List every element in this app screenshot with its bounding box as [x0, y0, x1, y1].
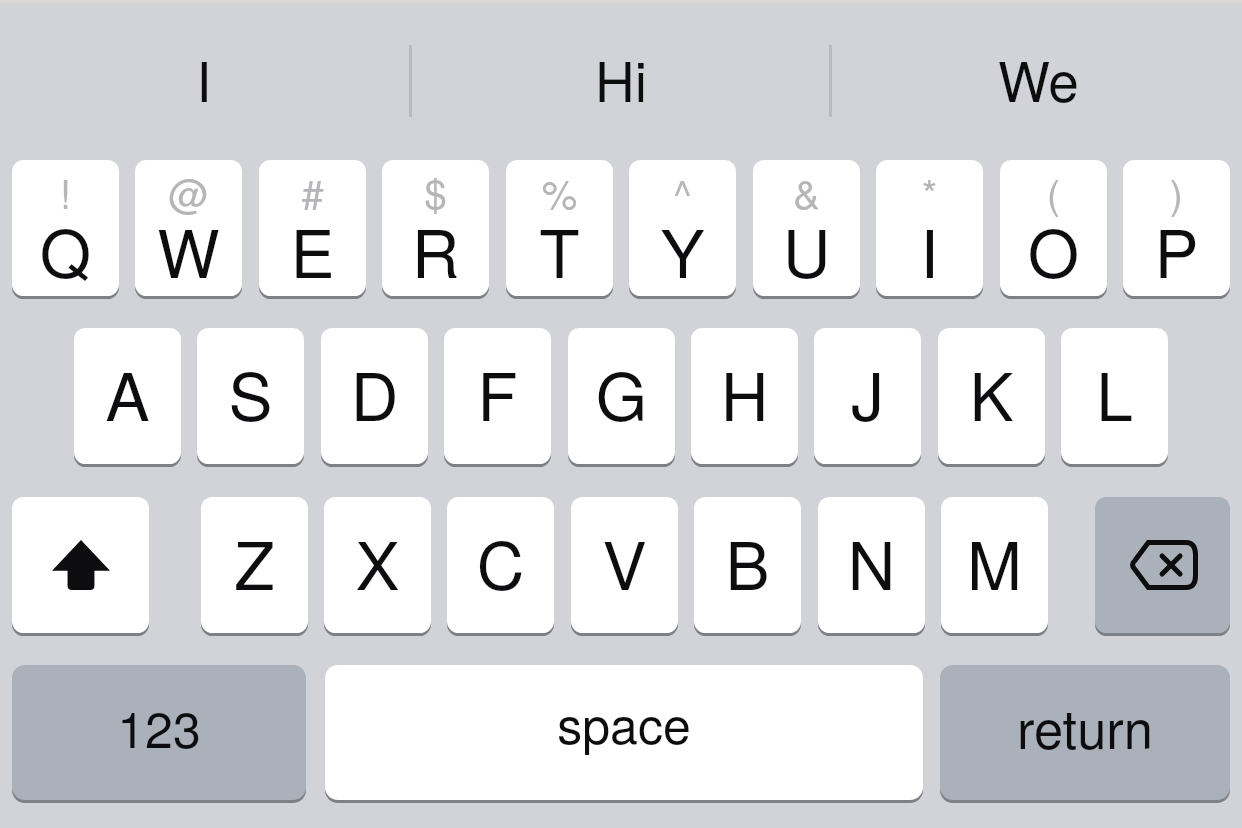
button[interactable]: #	[259, 160, 366, 296]
staticText: return	[940, 689, 1230, 764]
button[interactable]: L	[1061, 328, 1168, 464]
button[interactable]: N	[818, 497, 925, 633]
staticText: C	[447, 514, 554, 609]
staticText: N	[818, 514, 925, 609]
button[interactable]: Shift	[12, 497, 149, 633]
button[interactable]: X	[324, 497, 431, 633]
button[interactable]: F	[444, 328, 551, 464]
button[interactable]: @	[135, 160, 242, 296]
staticText: *	[876, 163, 983, 220]
staticText: I	[876, 202, 983, 296]
staticText: A	[74, 345, 181, 440]
staticText: $	[382, 163, 489, 220]
button[interactable]: (	[1000, 160, 1107, 296]
staticText: T	[506, 202, 613, 296]
staticText: F	[444, 345, 551, 440]
staticText: X	[324, 514, 431, 609]
button[interactable]: C	[447, 497, 554, 633]
staticText: Y	[629, 202, 736, 296]
staticText: M	[941, 514, 1048, 609]
staticText: O	[1000, 202, 1107, 296]
button[interactable]: I	[0, 0, 408, 160]
button[interactable]: H	[691, 328, 798, 464]
button[interactable]: M	[941, 497, 1048, 633]
staticText: B	[694, 514, 801, 609]
button[interactable]: $	[382, 160, 489, 296]
button[interactable]: K	[938, 328, 1045, 464]
staticText: G	[568, 345, 675, 440]
button[interactable]: 123	[12, 665, 306, 800]
staticText: &	[753, 163, 860, 220]
staticText: H	[691, 345, 798, 440]
staticText: I	[0, 39, 408, 118]
staticText: R	[382, 202, 489, 296]
button[interactable]: ^	[629, 160, 736, 296]
staticText: ^	[629, 163, 736, 220]
staticText: )	[1123, 163, 1230, 220]
staticText: P	[1123, 202, 1230, 296]
button[interactable]: return	[940, 665, 1230, 800]
staticText: Z	[201, 514, 308, 609]
button[interactable]: S	[197, 328, 304, 464]
staticText: E	[259, 202, 366, 296]
button[interactable]: A	[74, 328, 181, 464]
staticText: (	[1000, 163, 1107, 220]
staticText: V	[571, 514, 678, 609]
button[interactable]: *	[876, 160, 983, 296]
button[interactable]: %	[506, 160, 613, 296]
staticText: W	[135, 202, 242, 296]
button[interactable]: Hi	[414, 0, 828, 160]
button[interactable]: V	[571, 497, 678, 633]
button[interactable]: space	[325, 665, 923, 800]
staticText: S	[197, 345, 304, 440]
button[interactable]: Z	[201, 497, 308, 633]
button[interactable]: )	[1123, 160, 1230, 296]
staticText: U	[753, 202, 860, 296]
button[interactable]: &	[753, 160, 860, 296]
staticText: Hi	[414, 39, 828, 118]
button[interactable]: !	[12, 160, 119, 296]
staticText: D	[321, 345, 428, 440]
button[interactable]: Backspace	[1095, 497, 1230, 633]
button[interactable]: We	[835, 0, 1242, 160]
staticText: Q	[12, 202, 119, 296]
button[interactable]: G	[568, 328, 675, 464]
staticText: !	[12, 163, 119, 220]
button[interactable]: D	[321, 328, 428, 464]
staticText: %	[506, 163, 613, 220]
staticText: 123	[12, 691, 306, 763]
button[interactable]: B	[694, 497, 801, 633]
staticText: We	[835, 39, 1242, 118]
staticText: #	[259, 163, 366, 220]
staticText: J	[814, 345, 921, 440]
button[interactable]: J	[814, 328, 921, 464]
staticText: @	[135, 163, 242, 220]
staticText: K	[938, 345, 1045, 440]
staticText: space	[325, 687, 923, 759]
staticText: L	[1061, 345, 1168, 440]
